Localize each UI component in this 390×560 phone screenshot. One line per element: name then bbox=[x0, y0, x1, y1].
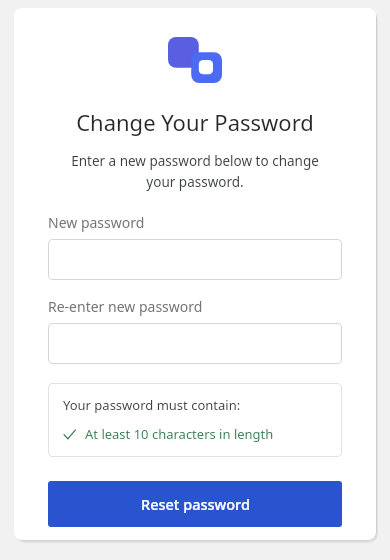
staticText: Change Your Password bbox=[76, 107, 314, 137]
staticText: Enter a new password below to change you… bbox=[62, 152, 328, 191]
staticText: Reset password bbox=[141, 494, 250, 514]
button[interactable] bbox=[48, 239, 342, 280]
staticText: At least 10 characters in length bbox=[85, 425, 274, 443]
staticText: Re-enter new password bbox=[48, 297, 203, 316]
staticText: Your password must contain: bbox=[63, 396, 241, 414]
staticText: New password bbox=[48, 213, 145, 232]
other: App logo bbox=[168, 37, 222, 83]
button[interactable] bbox=[48, 323, 342, 364]
button[interactable]: Reset password bbox=[48, 481, 342, 527]
